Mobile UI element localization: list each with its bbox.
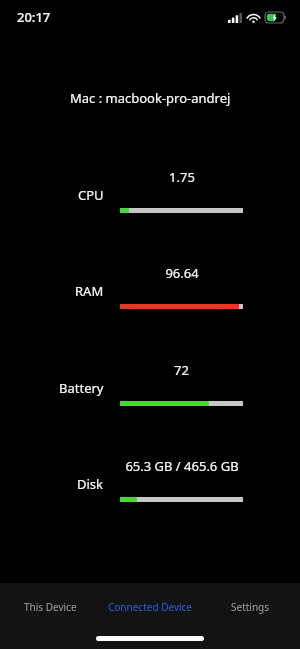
staticText: 20:17 [17, 8, 51, 26]
staticText: Mac : macbook-pro-andrej [70, 89, 231, 107]
staticText: 96.64 [165, 264, 199, 282]
staticText: Battery [59, 379, 104, 397]
staticText: RAM [75, 282, 104, 300]
staticText: 1.75 [169, 168, 195, 186]
button[interactable]: Settings [200, 583, 300, 630]
staticText: Connected Device [108, 600, 193, 614]
staticText: CPU [78, 186, 104, 204]
other: Cellular signal [228, 13, 242, 23]
staticText: 72 [174, 361, 189, 379]
button[interactable]: This Device [0, 583, 100, 630]
staticText: Settings [231, 600, 270, 614]
button[interactable]: Connected Device [100, 583, 200, 630]
other: Battery charging [265, 12, 287, 23]
staticText: Disk [77, 475, 104, 493]
staticText: 65.3 GB / 465.6 GB [125, 457, 239, 475]
other: Wi-Fi [247, 13, 260, 23]
staticText: This Device [24, 600, 77, 614]
